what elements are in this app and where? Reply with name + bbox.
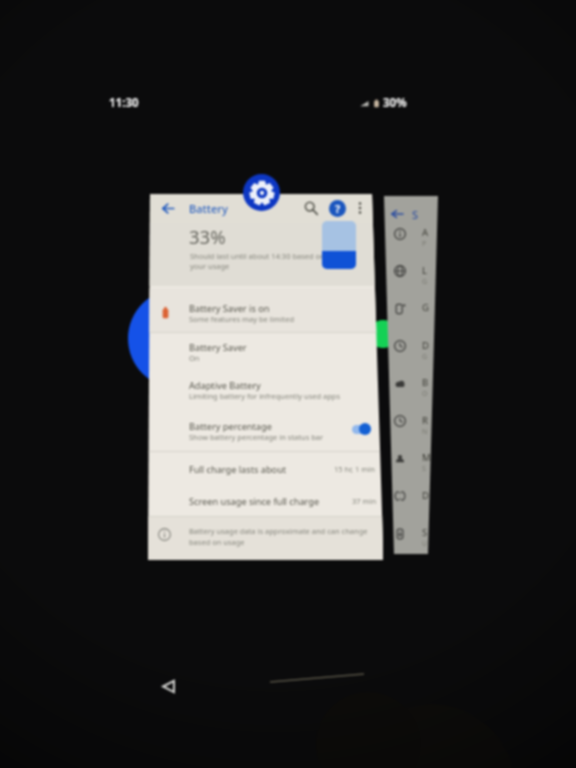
staticText: S: [422, 464, 426, 474]
staticText: O: [422, 389, 428, 399]
staticText: 37 min: [352, 496, 377, 506]
button[interactable]: Search: [297, 194, 325, 222]
staticText: G: [422, 352, 428, 362]
staticText: 11:30: [109, 95, 139, 111]
staticText: A: [422, 226, 429, 239]
staticText: 15 hr, 1 min: [334, 464, 375, 474]
button[interactable]: Battery percentage toggle: [349, 422, 374, 436]
staticText: Show battery percentage in status bar: [189, 432, 324, 442]
button[interactable]: Help: [323, 194, 351, 222]
staticText: S: [412, 207, 419, 222]
staticText: D: [422, 339, 429, 352]
staticText: R: [422, 414, 428, 427]
staticText: ?: [335, 201, 341, 216]
staticText: B: [422, 376, 429, 389]
staticText: G: [422, 301, 429, 314]
button[interactable]: Full charge lasts about: [189, 463, 287, 476]
staticText: 33%: [189, 224, 226, 249]
staticText: On: [189, 353, 200, 363]
staticText: 30%: [383, 95, 407, 111]
button[interactable]: Adaptive Battery: [189, 379, 261, 392]
staticText: N: [422, 427, 428, 437]
button[interactable]: Back: [154, 194, 182, 222]
button[interactable]: Screen usage since full charge: [189, 495, 320, 508]
staticText: Battery usage data is approximate and ca…: [189, 526, 368, 536]
button[interactable]: Battery Saver: [189, 341, 247, 354]
button[interactable]: Battery percentage: [189, 420, 272, 433]
staticText: U: [422, 539, 428, 549]
staticText: L: [422, 264, 427, 277]
staticText: M: [422, 451, 431, 464]
staticText: based on usage: [189, 537, 245, 547]
button[interactable]: Battery: [189, 201, 228, 216]
button[interactable]: Battery Saver is on: [189, 302, 270, 315]
button[interactable]: More options: [346, 194, 374, 222]
staticText: S: [422, 526, 428, 539]
staticText: P: [422, 239, 427, 249]
staticText: G: [422, 277, 428, 287]
staticText: Limiting battery for infrequently used a…: [189, 391, 341, 401]
staticText: Some features may be limited: [189, 314, 295, 324]
staticText: your usage: [190, 261, 230, 271]
button[interactable]: Settings app icon: [243, 174, 280, 211]
staticText: Should last until about 14:30 based on: [190, 251, 325, 261]
staticText: D: [422, 489, 429, 502]
button[interactable]: S: [384, 196, 438, 554]
button[interactable]: Back: [154, 672, 182, 700]
